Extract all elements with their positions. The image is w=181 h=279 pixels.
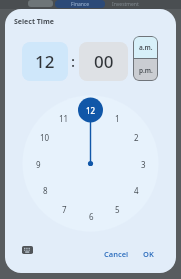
button[interactable] [17,242,37,258]
staticText: 1 [115,113,120,124]
button[interactable]: a.m. [133,36,158,58]
staticText: 3 [141,159,146,170]
button[interactable]: 00 [79,42,128,81]
staticText: 6 [89,211,94,222]
button[interactable]: OK [139,247,158,261]
staticText: 2 [134,132,139,143]
staticText: OK [143,249,154,259]
staticText: Investment [112,1,139,8]
staticText: Select Time [14,17,54,27]
staticText: p.m. [139,66,153,75]
staticText: 00 [94,50,114,73]
staticText: : [71,51,76,71]
staticText: 7 [62,204,67,215]
button[interactable]: 12 [22,42,68,81]
staticText: 5 [115,204,120,215]
staticText: 12 [86,105,96,116]
staticText: Cancel [104,249,129,259]
button[interactable]: p.m. [133,59,158,81]
staticText: 9 [36,159,41,170]
button[interactable]: Cancel [99,247,133,261]
staticText: 8 [43,185,48,196]
staticText: 11 [59,113,69,124]
staticText: 10 [40,132,50,143]
staticText: 4 [134,185,139,196]
staticText: Finance [71,1,90,8]
staticText: a.m. [139,43,153,52]
staticText: 12 [35,50,55,73]
